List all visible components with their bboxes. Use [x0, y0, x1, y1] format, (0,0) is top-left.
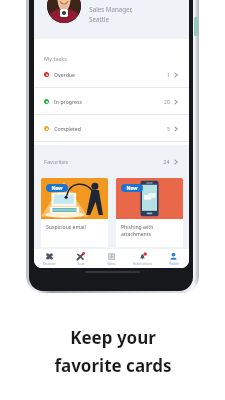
button[interactable]: New: [116, 178, 183, 247]
button[interactable]: Profile: [158, 249, 189, 268]
staticText: Keep your: [70, 326, 156, 349]
button[interactable]: Discover: [34, 249, 65, 268]
staticText: Sales Manager,: [89, 5, 133, 13]
staticText: Suspicious email: [46, 224, 86, 231]
staticText: Favorites: [44, 158, 68, 166]
staticText: New: [126, 185, 138, 192]
staticText: New: [51, 185, 63, 192]
staticText: In progress: [54, 98, 82, 105]
staticText: favorite cards: [54, 354, 172, 377]
staticText: Overdue: [54, 71, 75, 78]
staticText: Discover: [43, 262, 56, 266]
staticText: Notifications: [133, 262, 152, 266]
button[interactable]: In progress: [34, 88, 189, 115]
staticText: 1: [167, 71, 170, 78]
staticText: Seattle: [89, 15, 109, 23]
staticText: Phishing with attachments: [121, 224, 154, 238]
staticText: Profile: [169, 262, 179, 266]
button[interactable]: Completed: [34, 115, 189, 142]
button[interactable]: New: [41, 178, 108, 247]
staticText: 5: [167, 125, 170, 132]
button[interactable]: Scan: [65, 249, 96, 268]
button[interactable]: Overdue: [34, 61, 189, 88]
staticText: 24: [163, 158, 170, 166]
button[interactable]: News: [96, 249, 127, 268]
staticText: My tasks: [44, 55, 67, 63]
staticText: 20: [164, 98, 170, 105]
staticText: News: [107, 262, 116, 266]
staticText: Scan: [77, 262, 85, 266]
staticText: Completed: [54, 125, 81, 132]
button[interactable]: Favorites: [34, 156, 189, 168]
button[interactable]: Notifications: [127, 249, 158, 268]
